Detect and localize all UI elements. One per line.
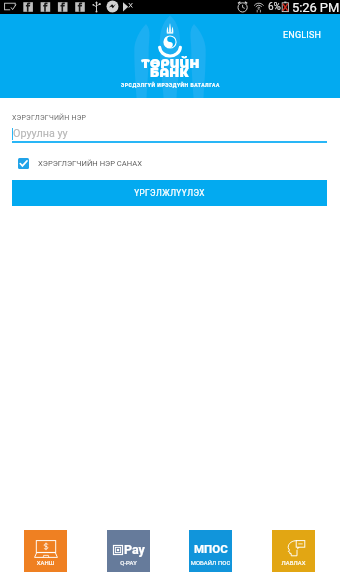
staticText: Оруулна уу (13, 127, 68, 140)
button[interactable]: Мобайл пос (189, 530, 232, 572)
staticText: ҮРГЭЛЖЛҮҮЛЭХ (134, 188, 205, 198)
staticText: Pay (124, 542, 145, 557)
staticText: ТӨРИЙН (141, 56, 200, 71)
staticText: ЭРСДЭЛГҮЙ ИРЭЭДҮЙН БАТАЛГАА (121, 82, 220, 88)
button[interactable]: Q-Pay (107, 530, 150, 572)
staticText: БАНК (150, 65, 190, 80)
button[interactable]: ENGLISH (279, 26, 326, 45)
button[interactable]: Лавлах (272, 530, 315, 572)
staticText: ХЭРЭГЛЭГЧИЙН НЭР (12, 114, 87, 122)
button[interactable]: Ханш (24, 530, 67, 572)
staticText: ХЭРЭГЛЭГЧИЙН НЭР САНАХ (38, 159, 142, 168)
staticText: ХАНШ (24, 560, 67, 567)
staticText: МПОС (194, 542, 228, 555)
staticText: МОБАЙЛ ПОС (189, 560, 232, 567)
staticText: ЛАВЛАХ (272, 560, 315, 567)
button[interactable]: ҮРГЭЛЖЛҮҮЛЭХ (12, 180, 327, 206)
staticText: Q-PAY (107, 560, 150, 567)
staticText: ENGLISH (283, 30, 322, 41)
staticText: 6% (268, 1, 281, 13)
staticText: 5:26 PM (292, 0, 340, 14)
button[interactable]: ХЭРЭГЛЭГЧИЙН НЭР САНАХ (12, 155, 327, 171)
button[interactable]: Оруулна уу (12, 127, 327, 141)
